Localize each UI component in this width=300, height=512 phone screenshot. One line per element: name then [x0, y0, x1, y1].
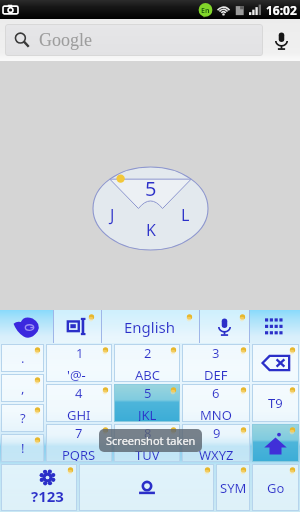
- staticText: 5: [144, 384, 152, 402]
- staticText: 1: [76, 344, 84, 362]
- staticText: 4: [75, 384, 83, 402]
- staticText: !: [21, 439, 25, 457]
- staticText: ABC: [135, 366, 160, 382]
- button[interactable]: SYM: [216, 464, 250, 511]
- button[interactable]: ,: [1, 374, 44, 402]
- staticText: SYM: [220, 479, 247, 497]
- button[interactable]: 1: [46, 344, 112, 382]
- staticText: ?123: [31, 486, 64, 506]
- button[interactable]: English: [101, 310, 199, 343]
- button[interactable]: 6: [182, 384, 250, 422]
- button[interactable]: Go: [252, 464, 299, 511]
- button[interactable]: 9: [182, 424, 250, 462]
- button[interactable]: .: [1, 344, 44, 372]
- staticText: En: [201, 6, 210, 16]
- staticText: 7: [75, 424, 83, 442]
- button[interactable]: T9: [252, 384, 299, 422]
- button[interactable]: GO Keyboard menu: [0, 310, 53, 343]
- button[interactable]: ?: [1, 404, 44, 432]
- staticText: 6: [212, 384, 220, 402]
- staticText: DEF: [204, 366, 228, 382]
- staticText: 8: [144, 424, 152, 442]
- staticText: L: [181, 204, 190, 226]
- button[interactable]: 8: [114, 424, 180, 462]
- button[interactable]: 5: [114, 384, 180, 422]
- staticText: 5: [145, 175, 157, 202]
- button[interactable]: Input method: [53, 310, 101, 343]
- staticText: English: [124, 317, 176, 337]
- button[interactable]: ?123: [1, 464, 77, 511]
- staticText: JKL: [138, 406, 157, 422]
- staticText: .: [21, 349, 25, 367]
- button[interactable]: Voice input: [199, 310, 249, 343]
- staticText: 2: [144, 344, 152, 362]
- staticText: GHI: [67, 406, 91, 422]
- button[interactable]: !: [1, 434, 44, 462]
- button[interactable]: Shift: [252, 424, 299, 462]
- staticText: J: [110, 204, 115, 226]
- button[interactable]: Backspace: [252, 344, 299, 382]
- staticText: 16:02: [266, 2, 297, 18]
- button[interactable]: 3: [182, 344, 250, 382]
- staticText: 9: [213, 424, 221, 442]
- button[interactable]: 7: [46, 424, 112, 462]
- button[interactable]: Space: [79, 464, 214, 511]
- staticText: T9: [268, 394, 283, 412]
- staticText: TUV: [135, 446, 160, 462]
- staticText: K: [146, 219, 156, 241]
- button[interactable]: More keyboards: [249, 310, 300, 343]
- staticText: Google: [39, 30, 92, 50]
- button[interactable]: 4: [46, 384, 112, 422]
- staticText: WXYZ: [199, 446, 234, 462]
- button[interactable]: Google: [5, 24, 263, 56]
- staticText: Go: [267, 479, 285, 497]
- staticText: Screenshot taken: [106, 433, 196, 448]
- staticText: ?: [20, 409, 26, 427]
- staticText: PQRS: [62, 446, 96, 462]
- staticText: ,: [21, 379, 25, 397]
- button[interactable]: 2: [114, 344, 180, 382]
- staticText: '@-_: [67, 366, 92, 382]
- staticText: 3: [212, 344, 220, 362]
- button[interactable]: Voice search: [263, 24, 300, 56]
- staticText: MNO: [200, 406, 232, 422]
